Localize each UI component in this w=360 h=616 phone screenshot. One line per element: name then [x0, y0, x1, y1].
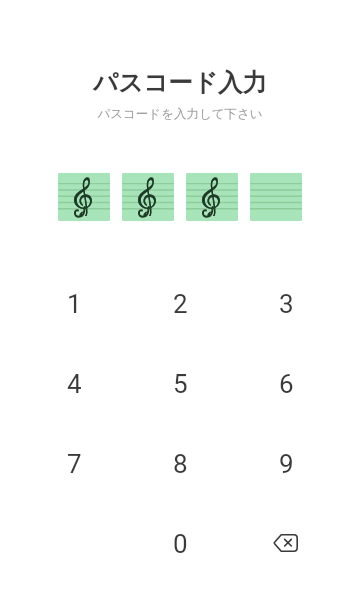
- button[interactable]: 9: [233, 424, 339, 504]
- staticText: 8: [173, 449, 188, 479]
- staticText: 𝄞: [72, 173, 94, 216]
- staticText: 𝄞: [72, 173, 94, 216]
- button[interactable]: 3: [233, 264, 339, 344]
- button[interactable]: 7: [21, 424, 127, 504]
- staticText: 7: [67, 449, 82, 479]
- staticText: 3: [279, 289, 294, 319]
- button[interactable]: Backspace: [233, 504, 339, 584]
- staticText: 1: [67, 289, 82, 319]
- button[interactable]: 2: [127, 264, 233, 344]
- staticText: 6: [279, 369, 294, 399]
- staticText: 𝄞: [200, 173, 222, 216]
- button[interactable]: 8: [127, 424, 233, 504]
- button[interactable]: 6: [233, 344, 339, 424]
- staticText: 𝄞: [200, 173, 222, 216]
- button[interactable]: 4: [21, 344, 127, 424]
- button[interactable]: 5: [127, 344, 233, 424]
- staticText: 𝄞: [72, 173, 94, 216]
- staticText: 0: [173, 529, 188, 559]
- staticText: 𝄞: [200, 173, 222, 216]
- staticText: パスコードを入力して下さい: [97, 106, 263, 122]
- staticText: 𝄞: [136, 173, 158, 216]
- staticText: 𝄞: [136, 173, 158, 216]
- staticText: 9: [279, 449, 294, 479]
- staticText: 2: [173, 289, 188, 319]
- staticText: 4: [67, 369, 82, 399]
- staticText: 5: [173, 369, 188, 399]
- button[interactable]: 1: [21, 264, 127, 344]
- staticText: パスコード入力: [93, 67, 267, 98]
- button[interactable]: 0: [127, 504, 233, 584]
- staticText: 𝄞: [136, 173, 158, 216]
